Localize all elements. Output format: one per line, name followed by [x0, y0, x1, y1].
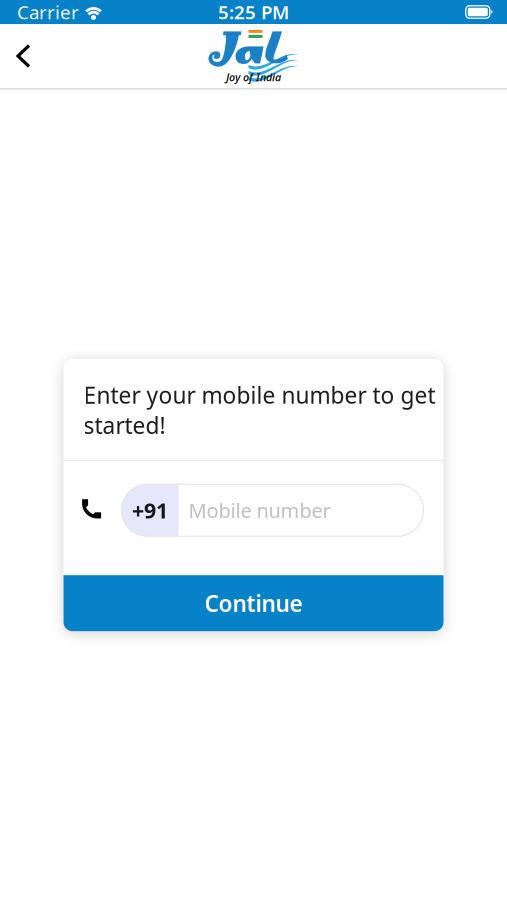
staticText: Continue	[204, 588, 302, 618]
staticText: Joy of India	[226, 70, 281, 84]
staticText: 5:25 PM	[218, 0, 289, 24]
staticText: +91	[132, 496, 168, 524]
button[interactable]: Back	[0, 28, 51, 84]
button[interactable]: +91	[121, 484, 423, 536]
staticText: Carrier	[17, 0, 79, 24]
button[interactable]: Continue	[63, 575, 443, 631]
staticText: Mobile number	[188, 497, 330, 523]
staticText: Enter your mobile number to get started!	[83, 380, 435, 440]
